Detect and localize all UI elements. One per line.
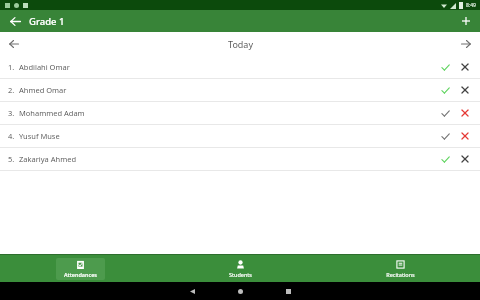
button[interactable]: 3. [0,102,480,124]
button[interactable]: Add [457,12,475,30]
button[interactable]: 5. [0,148,480,170]
staticText: Ahmed Omar [19,85,67,95]
button[interactable]: Previous day [5,35,23,53]
button[interactable]: Back [184,283,200,299]
staticText: Mohammed Adam [19,108,85,118]
button[interactable]: Mark present [436,104,454,122]
staticText: Grade 1 [29,15,65,28]
staticText: 1. [8,62,15,72]
button[interactable]: Next day [457,35,475,53]
staticText: Abdilahi Omar [19,62,70,72]
button[interactable]: 2. [0,79,480,101]
staticText: Students [229,271,252,278]
button[interactable]: Recent apps [280,283,296,299]
button[interactable]: Mark present [436,127,454,145]
staticText: Today [228,38,253,50]
button[interactable]: Recitations [378,258,423,280]
staticText: Recitations [386,271,415,278]
staticText: Attendances [64,271,97,278]
button[interactable]: Home [232,283,248,299]
button[interactable]: Mark present [436,58,454,76]
staticText: 2. [8,85,15,95]
button[interactable]: Mark absent [456,58,474,76]
button[interactable]: Mark absent [456,150,474,168]
staticText: 8:49 [466,2,476,9]
button[interactable]: Mark absent [456,81,474,99]
button[interactable]: Attendances [56,258,105,280]
button[interactable]: Mark present [436,150,454,168]
button[interactable]: Students [221,258,260,280]
button[interactable]: Mark present [436,81,454,99]
button[interactable]: Mark absent [456,104,474,122]
button[interactable]: Mark absent [456,127,474,145]
staticText: Yusuf Muse [19,131,60,141]
staticText: 3. [8,108,15,118]
staticText: 4. [8,131,15,141]
staticText: 5. [8,154,15,164]
button[interactable]: 1. [0,56,480,78]
button[interactable]: 4. [0,125,480,147]
staticText: Zakariya Ahmed [19,154,77,164]
button[interactable]: Back [6,12,24,30]
